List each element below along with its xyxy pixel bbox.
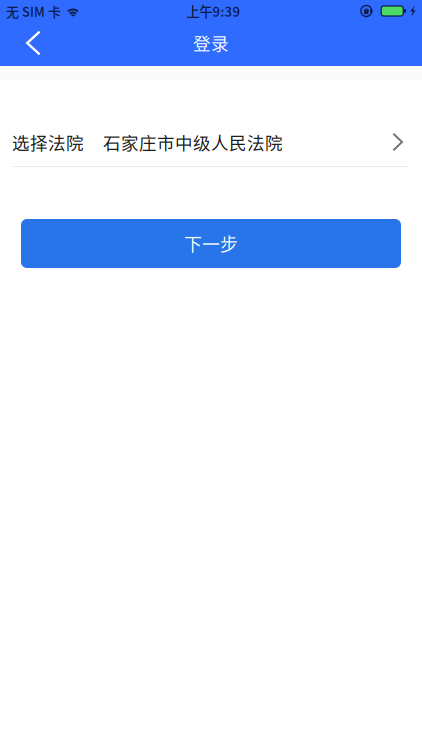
staticText: 下一步 <box>184 230 238 256</box>
button[interactable]: Back <box>0 23 55 65</box>
staticText: 选择法院 <box>12 129 84 155</box>
staticText: 无 SIM 卡 <box>6 2 61 20</box>
staticText: 登录 <box>193 30 229 55</box>
staticText: 上午9:39 <box>186 1 240 20</box>
button[interactable]: 选择法院 <box>0 118 422 166</box>
staticText: 石家庄市中级人民法院 <box>103 129 283 155</box>
button[interactable]: 下一步 <box>21 219 401 268</box>
